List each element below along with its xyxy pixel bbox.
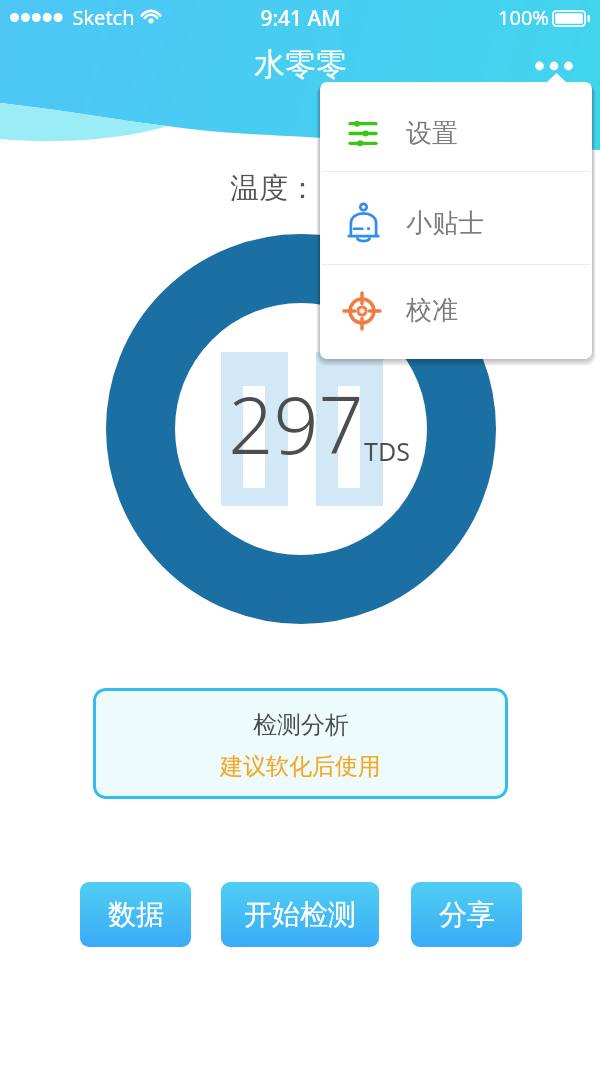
staticText: 设置 [406, 117, 458, 150]
staticText: 水零零 [254, 45, 347, 84]
staticText: 校准 [406, 294, 458, 327]
staticText: TDS [364, 434, 410, 468]
button[interactable]: 设置 [320, 83, 592, 171]
staticText: 数据 [108, 897, 164, 932]
staticText: 分享 [439, 897, 495, 932]
staticText: 100% [498, 4, 549, 31]
staticText: 9:41 AM [260, 4, 341, 33]
button[interactable]: 校准 [320, 265, 592, 362]
staticText: 小贴士 [406, 207, 484, 240]
button[interactable]: 小贴士 [320, 172, 592, 264]
button[interactable]: 开始检测 [221, 882, 379, 947]
staticText: 检测分析 [253, 710, 349, 740]
staticText: 297 [228, 370, 364, 478]
staticText: 温度： [230, 170, 317, 207]
button[interactable]: More options [519, 44, 581, 88]
button[interactable]: 检测分析 [93, 688, 508, 799]
button[interactable]: 分享 [411, 882, 522, 947]
staticText: 开始检测 [244, 897, 356, 932]
staticText: Sketch [72, 4, 135, 31]
staticText: 建议软化后使用 [220, 752, 381, 781]
button[interactable]: 数据 [80, 882, 191, 947]
